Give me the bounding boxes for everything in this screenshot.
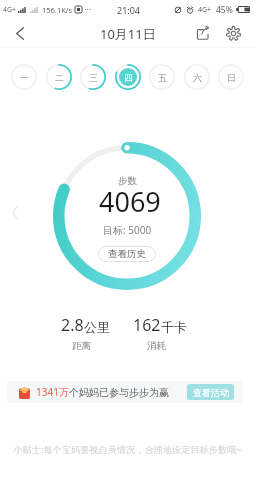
staticText: 六 [193, 72, 202, 83]
button[interactable]: 查看活动 [187, 384, 234, 400]
button[interactable]: 日 [218, 64, 244, 90]
button[interactable]: Settings [219, 19, 247, 47]
button[interactable]: 一 [11, 64, 37, 90]
staticText: 21:04 [117, 4, 141, 16]
staticText: 消耗 [147, 340, 166, 352]
staticText: 目标: 5000 [103, 223, 152, 237]
staticText: 日 [227, 72, 236, 83]
button[interactable]: 查看历史 [98, 246, 156, 262]
staticText: 三 [89, 72, 98, 83]
staticText: 四 [124, 72, 133, 83]
staticText: 步数 [118, 175, 137, 187]
staticText: 156.1K/s [42, 5, 73, 15]
button[interactable]: 四 [115, 64, 141, 90]
staticText: 距离 [72, 340, 91, 352]
staticText: 4G+ [198, 5, 212, 15]
staticText: 10月11日 [100, 25, 156, 43]
staticText: 二 [55, 72, 64, 83]
staticText: 千卡 [161, 319, 187, 335]
button[interactable]: 五 [149, 64, 175, 90]
staticText: 一 [20, 72, 29, 83]
staticText: 4069 [99, 183, 161, 220]
staticText: 查看活动 [193, 387, 229, 398]
staticText: ⋯ [84, 5, 92, 14]
staticText: 4G+ [3, 5, 17, 15]
button[interactable]: 三 [80, 64, 106, 90]
staticText: 1341万 [36, 385, 69, 399]
staticText: 45% [216, 4, 233, 16]
button[interactable]: 二 [46, 64, 72, 90]
staticText: 2.8 [61, 314, 84, 336]
staticText: 小贴士:每个宝妈要视自身情况，合理地设定目标步数哦~ [0, 443, 255, 456]
button[interactable]: Share [189, 19, 217, 47]
staticText: 162 [133, 314, 161, 336]
button[interactable]: 1341万 [7, 381, 243, 403]
button[interactable]: 六 [184, 64, 210, 90]
staticText: 查看历史 [108, 248, 146, 260]
button[interactable]: Back [0, 19, 40, 47]
staticText: 五 [158, 72, 167, 83]
staticText: 公里 [84, 319, 110, 335]
staticText: 个妈妈已参与步步为赢 [69, 386, 169, 399]
button[interactable]: Previous day [6, 200, 24, 224]
